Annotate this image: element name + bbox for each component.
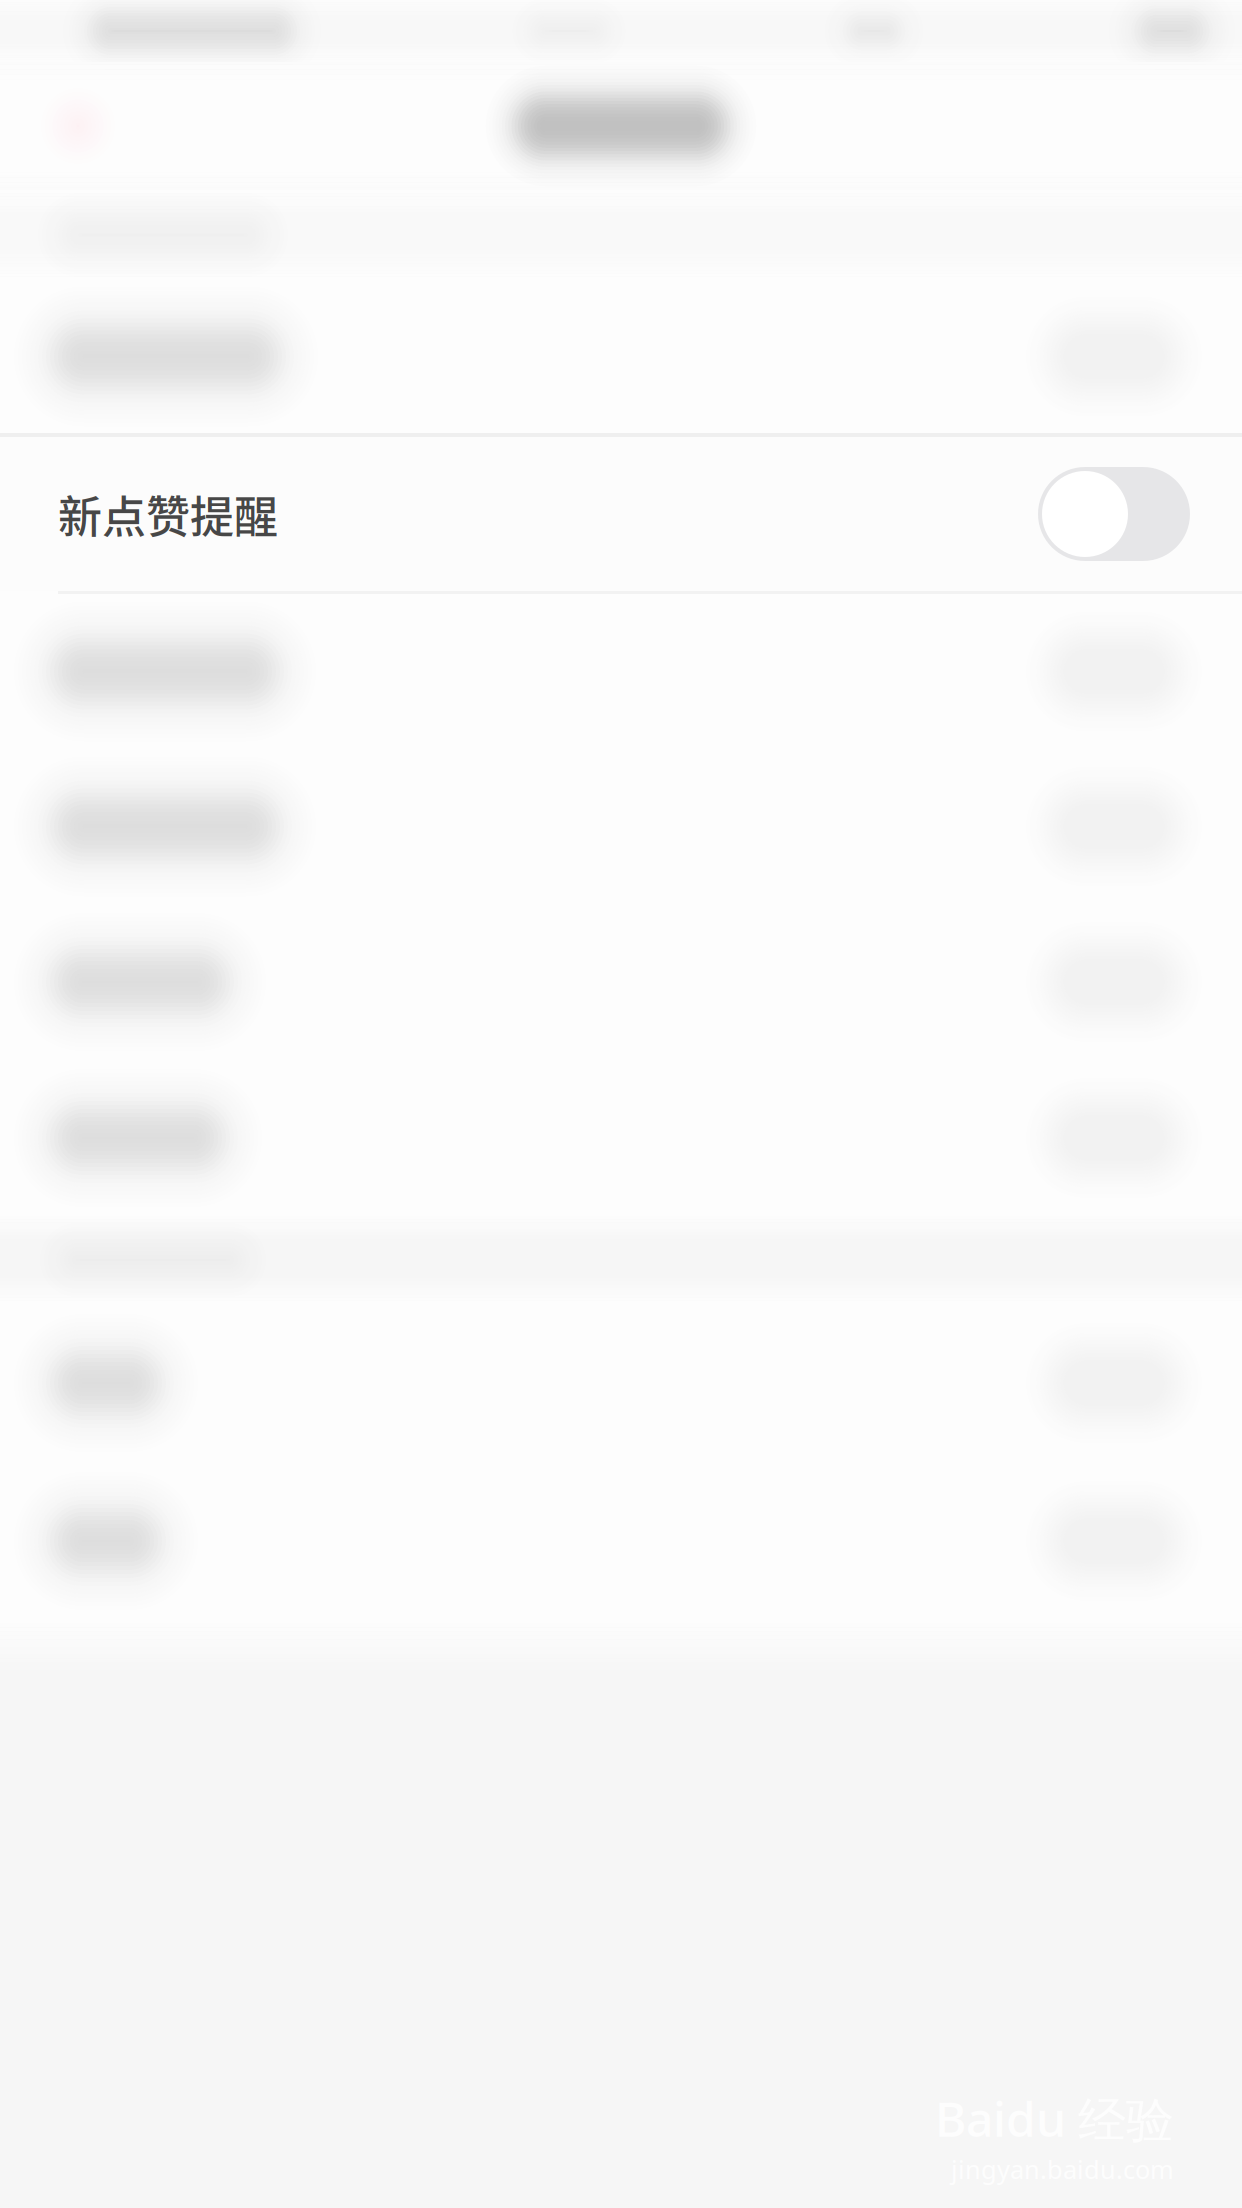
button[interactable] <box>0 1462 1242 1620</box>
staticText: 新点赞提醒 <box>58 482 278 546</box>
button[interactable] <box>0 594 1242 749</box>
button[interactable] <box>0 749 1242 904</box>
button[interactable] <box>0 1304 1242 1462</box>
button[interactable] <box>0 280 1242 433</box>
button[interactable] <box>0 1060 1242 1216</box>
button[interactable]: 新点赞提醒 <box>0 437 1242 591</box>
button[interactable] <box>0 904 1242 1060</box>
